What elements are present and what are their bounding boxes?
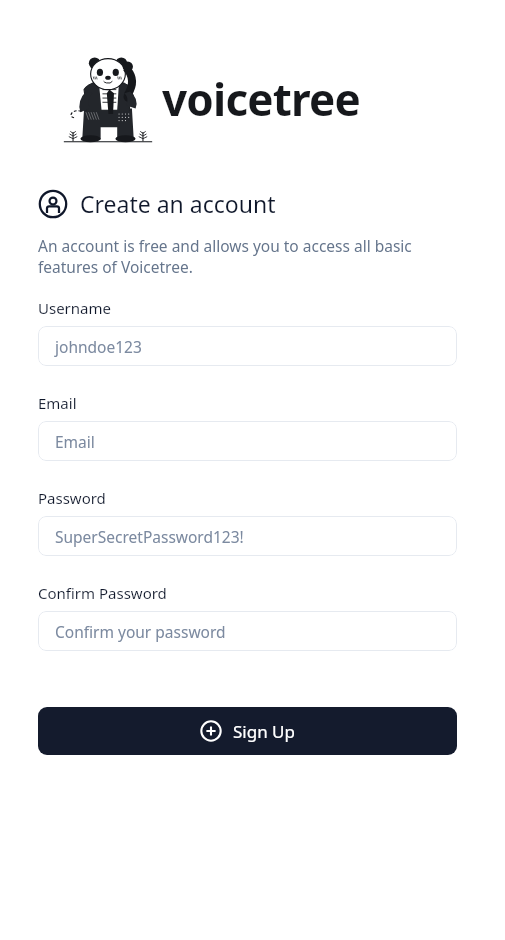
button[interactable]: johndoe123 [38, 326, 457, 366]
staticText: An account is free and allows you to acc… [38, 235, 412, 278]
staticText: Email [55, 431, 95, 452]
staticText: johndoe123 [55, 336, 142, 357]
staticText: SuperSecretPassword123! [55, 526, 244, 547]
button[interactable]: Email [38, 421, 457, 461]
button[interactable]: SuperSecretPassword123! [38, 516, 457, 556]
staticText: voicetree [162, 69, 360, 129]
staticText: Confirm your password [55, 621, 226, 642]
staticText: Password [38, 488, 106, 508]
staticText: Username [38, 298, 111, 318]
staticText: Email [38, 393, 77, 413]
staticText: Confirm Password [38, 583, 167, 603]
button[interactable]: Sign Up [38, 707, 457, 755]
staticText: Create an account [80, 188, 276, 219]
staticText: Sign Up [233, 720, 295, 743]
button[interactable]: Confirm your password [38, 611, 457, 651]
